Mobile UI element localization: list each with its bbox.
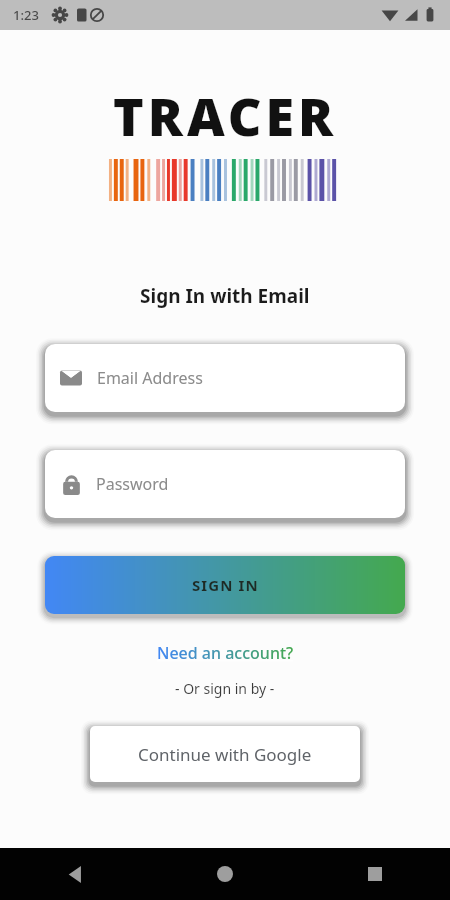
button[interactable]: Need an account? <box>151 640 300 666</box>
button[interactable]: Continue with Google <box>90 726 360 782</box>
staticText: Need an account? <box>157 642 294 664</box>
staticText: 1:23 <box>13 6 39 24</box>
staticText: Email Address <box>97 367 203 389</box>
staticText: - Or sign in by - <box>175 679 275 698</box>
button[interactable]: SIGN IN <box>45 556 405 614</box>
staticText: Sign In with Email <box>140 283 310 309</box>
staticText: Password <box>96 473 169 495</box>
staticText: Continue with Google <box>138 743 312 766</box>
button[interactable]: Home <box>150 848 300 900</box>
staticText: SIGN IN <box>192 575 259 595</box>
button[interactable]: Email Address <box>45 344 405 412</box>
button[interactable]: Back <box>0 848 150 900</box>
staticText: TRACER <box>113 80 338 151</box>
button[interactable]: Recent apps <box>300 848 450 900</box>
button[interactable]: Password <box>45 450 405 518</box>
